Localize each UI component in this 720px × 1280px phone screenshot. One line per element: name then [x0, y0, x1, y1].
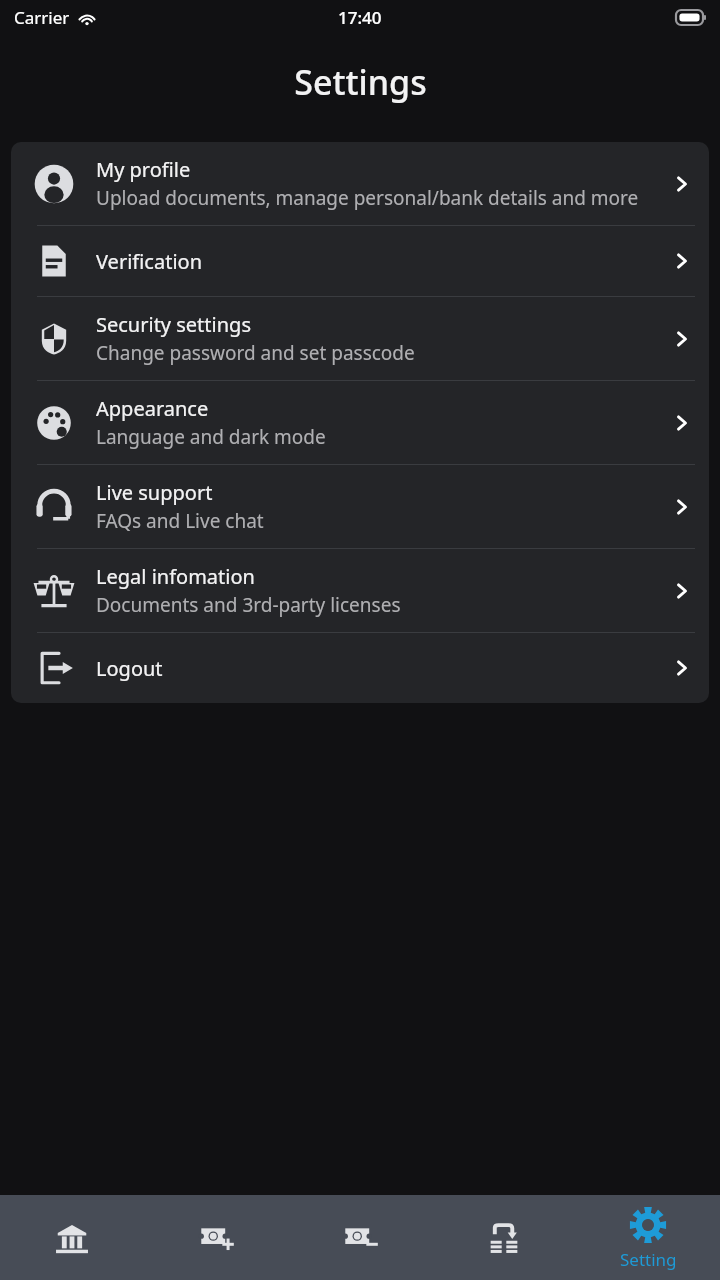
button[interactable]: Appearance: [11, 381, 709, 464]
button[interactable]: Transfers: [432, 1195, 576, 1280]
staticText: 17:40: [338, 6, 382, 29]
button[interactable]: My profile: [11, 142, 709, 225]
staticText: FAQs and Live chat: [96, 508, 264, 534]
staticText: Appearance: [96, 395, 209, 422]
button[interactable]: Withdraw: [288, 1195, 432, 1280]
button[interactable]: Verification: [11, 226, 709, 296]
staticText: Change password and set passcode: [96, 340, 415, 366]
staticText: Documents and 3rd-party licenses: [96, 592, 401, 618]
button[interactable]: Deposit: [144, 1195, 288, 1280]
staticText: Logout: [96, 655, 163, 682]
staticText: Security settings: [96, 311, 251, 338]
staticText: Settings: [294, 59, 427, 105]
staticText: Setting: [620, 1248, 677, 1271]
button[interactable]: Home: [0, 1195, 144, 1280]
staticText: Legal infomation: [96, 563, 255, 590]
staticText: Carrier: [14, 6, 70, 29]
staticText: Live support: [96, 479, 213, 506]
button[interactable]: Live support: [11, 465, 709, 548]
button[interactable]: Logout: [11, 633, 709, 703]
staticText: Language and dark mode: [96, 424, 326, 450]
staticText: Verification: [96, 248, 202, 275]
staticText: My profile: [96, 156, 191, 183]
staticText: Upload documents, manage personal/bank d…: [96, 185, 639, 211]
button[interactable]: Legal infomation: [11, 549, 709, 632]
button[interactable]: Security settings: [11, 297, 709, 380]
button[interactable]: Setting: [576, 1195, 720, 1280]
